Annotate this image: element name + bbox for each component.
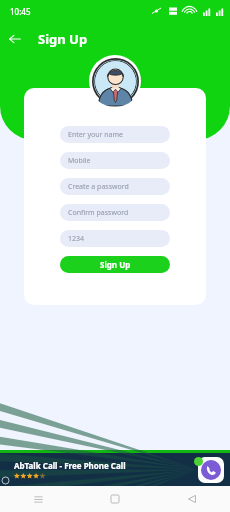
staticText: Confirm password xyxy=(68,208,129,218)
staticText: Sign Up xyxy=(38,30,88,48)
button[interactable]: Enter your name xyxy=(60,126,170,143)
button[interactable]: Profile photo xyxy=(89,55,141,107)
button[interactable]: Mobile xyxy=(60,152,170,169)
staticText: Enter your name xyxy=(68,130,123,140)
staticText: Mobile xyxy=(68,156,91,166)
button[interactable]: Create a password xyxy=(60,178,170,195)
staticText: AbTalk Call - Free Phone Call xyxy=(14,460,126,471)
button[interactable]: Confirm password xyxy=(60,204,170,221)
button[interactable]: Back xyxy=(0,24,30,54)
button[interactable]: Back xyxy=(153,486,230,512)
button[interactable]: Recent apps xyxy=(0,486,76,512)
button[interactable]: Home xyxy=(76,486,153,512)
button[interactable]: Sign Up xyxy=(60,256,170,273)
staticText: 10:45 xyxy=(10,6,31,17)
staticText: 1234 xyxy=(68,234,85,244)
staticText: Create a password xyxy=(68,182,129,192)
button[interactable]: Advertisement: AbTalk Call - Free Phone … xyxy=(0,453,230,486)
button[interactable]: 1234 xyxy=(60,230,170,247)
staticText: Sign Up xyxy=(100,259,131,270)
